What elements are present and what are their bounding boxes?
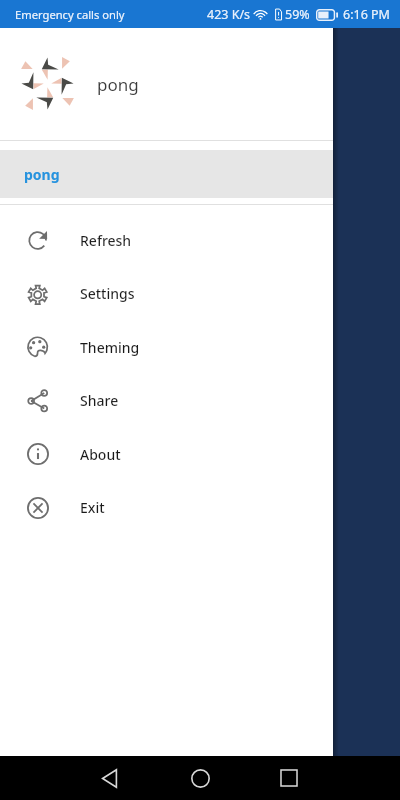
staticText: Emergency calls only (15, 7, 125, 22)
staticText: Exit (80, 498, 105, 517)
staticText: Refresh (80, 231, 132, 250)
button[interactable]: pong (0, 28, 333, 140)
staticText: pong (24, 165, 60, 184)
button[interactable]: Refresh (0, 213, 333, 267)
button[interactable]: Recents (267, 756, 311, 800)
staticText: pong (97, 73, 139, 96)
button[interactable]: Share (0, 374, 333, 427)
staticText: About (80, 445, 121, 464)
staticText: 6:16 PM (343, 6, 390, 23)
staticText: Share (80, 391, 119, 410)
staticText: 59% (285, 6, 310, 23)
button[interactable]: Settings (0, 267, 333, 320)
staticText: 6:16 PM (343, 6, 390, 23)
staticText: 59% (285, 6, 310, 23)
staticText: 423 K/s (207, 6, 251, 23)
button[interactable]: pong (0, 150, 333, 198)
button[interactable]: Exit (0, 481, 333, 534)
button[interactable]: Theming (0, 320, 333, 374)
staticText: 423 K/s (207, 6, 251, 23)
button[interactable]: About (0, 427, 333, 481)
staticText: Emergency calls only (15, 7, 125, 22)
button[interactable]: Back (87, 756, 131, 800)
staticText: Settings (80, 284, 135, 303)
button[interactable]: Home (178, 756, 222, 800)
staticText: Theming (80, 338, 140, 357)
